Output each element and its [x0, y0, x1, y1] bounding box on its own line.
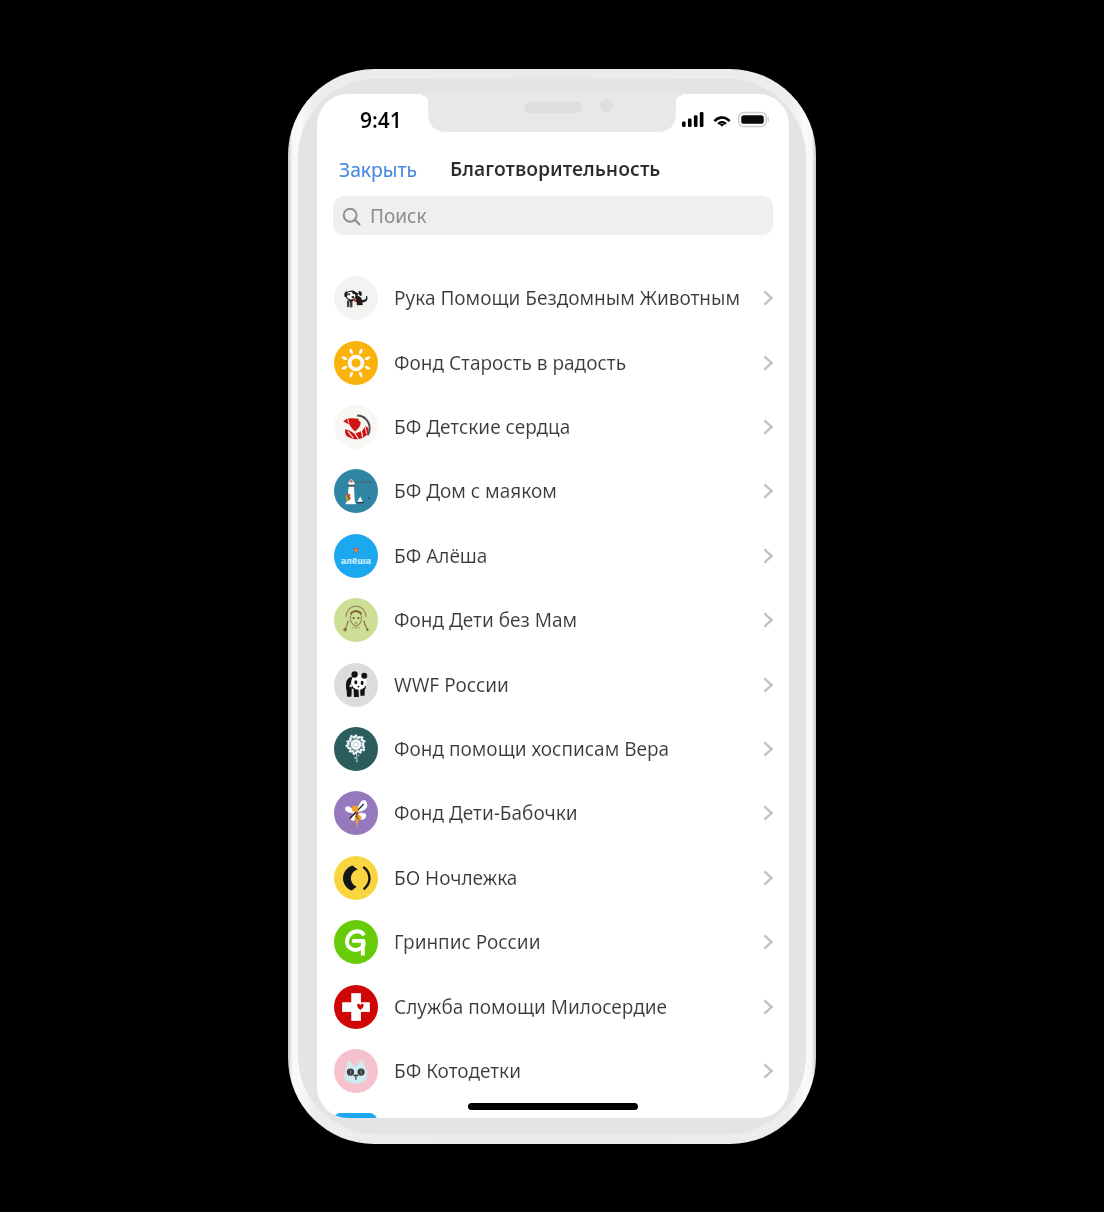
button[interactable]: БФ Котодетки	[317, 1039, 789, 1103]
staticText: БФ Дом с маяком	[394, 478, 763, 504]
button[interactable]: Рука Помощи Бездомным Животным	[317, 266, 789, 330]
staticText: Гринпис России	[394, 929, 763, 955]
staticText: Фонд Старость в радость	[394, 350, 763, 376]
staticText: Рука Помощи Бездомным Животным	[394, 285, 763, 311]
staticText: Фонд помощи хосписам Вера	[394, 736, 763, 762]
button[interactable]: БО Ночлежка	[317, 845, 789, 910]
staticText: БФ Котодетки	[394, 1058, 763, 1084]
staticText: Благотворительность	[450, 155, 661, 181]
staticText: Служба помощи Милосердие	[394, 994, 763, 1020]
staticText: Фонд Дети-Бабочки	[394, 800, 763, 826]
button[interactable]: Гринпис России	[317, 910, 789, 974]
button[interactable]: Служба помощи Милосердие	[317, 974, 789, 1039]
staticText: Фонд Дети без Мам	[394, 607, 763, 633]
button[interactable]: WWF России	[317, 652, 789, 717]
button[interactable]: Закрыть	[317, 146, 439, 192]
button[interactable]: Фонд Старость в радость	[317, 330, 789, 395]
staticText: алёша	[341, 554, 372, 566]
button[interactable]: БФ Детские сердца	[317, 395, 789, 459]
staticText: БФ Детские сердца	[394, 414, 763, 440]
staticText: Поиск	[370, 203, 427, 229]
button[interactable]: алёша	[317, 523, 789, 588]
staticText: БО Ночлежка	[394, 865, 763, 891]
button[interactable]: Фонд помощи хосписам Вера	[317, 717, 789, 781]
staticText: WWF России	[394, 672, 763, 698]
button[interactable]: БФ Дом с маяком	[317, 459, 789, 523]
button[interactable]: Поиск	[333, 196, 773, 235]
staticText: БФ Алёша	[394, 543, 763, 569]
staticText: Закрыть	[339, 156, 417, 182]
button[interactable]: Фонд Дети-Бабочки	[317, 781, 789, 845]
staticText: 9:41	[360, 106, 402, 135]
button[interactable]: Фонд Дети без Мам	[317, 588, 789, 652]
